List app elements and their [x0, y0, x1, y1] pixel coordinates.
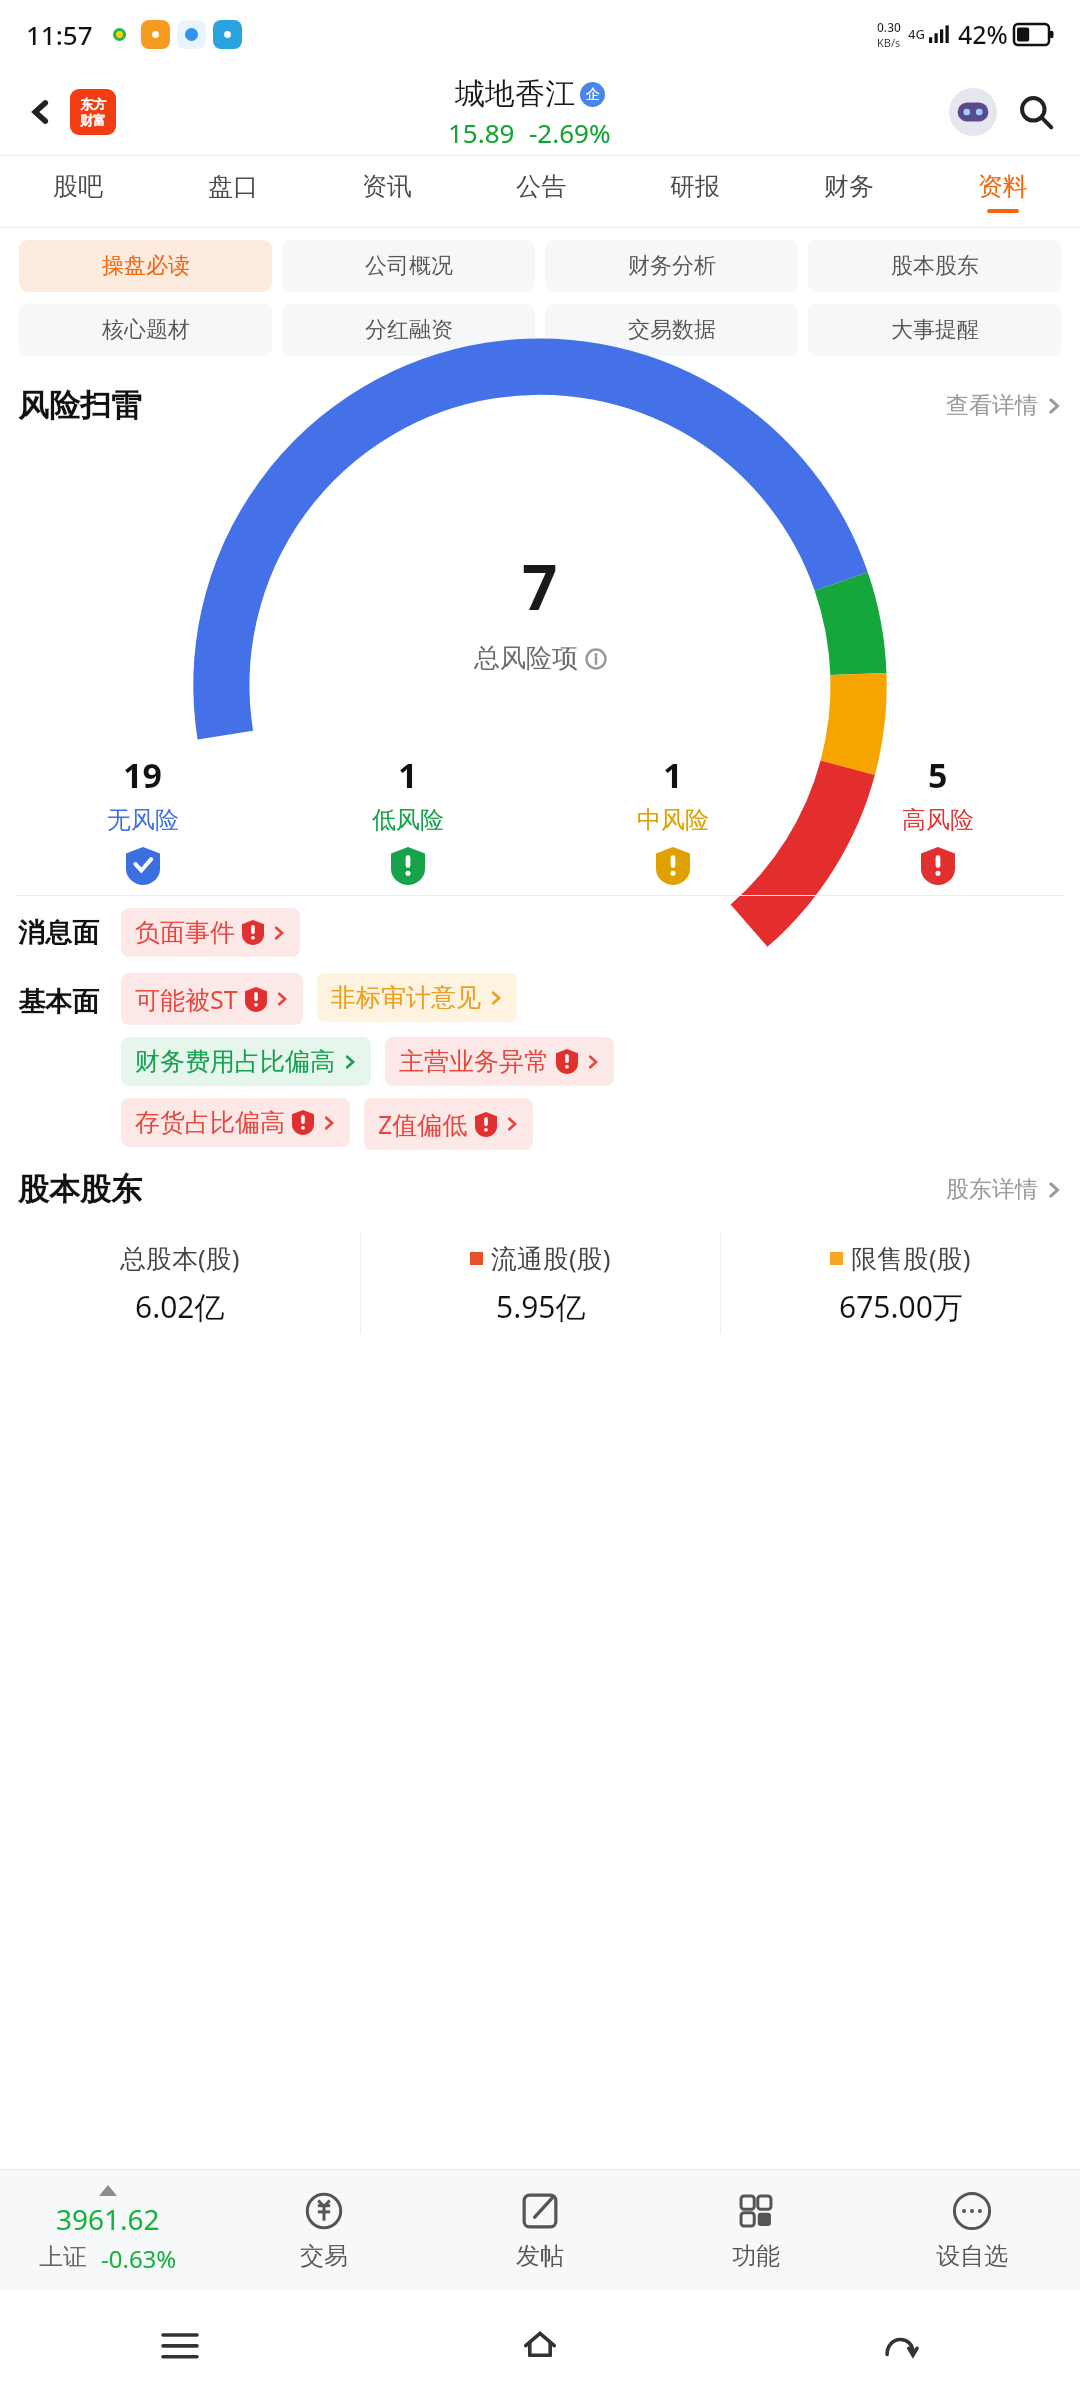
- staticText: 风险扫雷: [18, 386, 142, 425]
- button[interactable]: 研报: [618, 156, 772, 228]
- button[interactable]: 股本股东: [808, 240, 1061, 292]
- staticText: 3961.62: [56, 2200, 160, 2238]
- staticText: 财务分析: [628, 252, 716, 280]
- staticText: 5.95亿: [496, 1286, 586, 1327]
- staticText: 总股本(股): [120, 1240, 240, 1276]
- button[interactable]: Back: [18, 89, 64, 135]
- staticText: 存货占比偏高: [135, 1107, 285, 1138]
- staticText: 股吧: [53, 171, 103, 202]
- staticText: 资料: [978, 171, 1028, 202]
- button[interactable]: 资料: [926, 156, 1080, 228]
- staticText: 股本股东: [891, 252, 979, 280]
- button[interactable]: 19: [10, 752, 275, 885]
- staticText: 可能被ST: [135, 982, 238, 1016]
- button[interactable]: 5: [805, 752, 1070, 885]
- staticText: 操盘必读: [102, 252, 190, 280]
- button[interactable]: 总股本(股): [0, 1218, 360, 1348]
- button[interactable]: 交易数据: [545, 304, 798, 356]
- staticText: 6.02亿: [135, 1286, 225, 1327]
- button[interactable]: 存货占比偏高: [121, 1098, 350, 1147]
- button[interactable]: 大事提醒: [808, 304, 1061, 356]
- staticText: 盘口: [208, 171, 258, 202]
- staticText: 4G: [908, 25, 925, 43]
- staticText: 股本股东: [18, 1170, 142, 1209]
- button[interactable]: Search: [1010, 86, 1062, 138]
- staticText: 分红融资: [365, 316, 453, 344]
- staticText: 15.89: [448, 115, 515, 150]
- button[interactable]: 发帖: [432, 2170, 648, 2290]
- staticText: 0.30: [877, 19, 901, 35]
- staticText: 财务费用占比偏高: [135, 1046, 335, 1077]
- staticText: 负面事件: [135, 917, 235, 948]
- staticText: 公司概况: [365, 252, 453, 280]
- staticText: 财富: [80, 112, 106, 128]
- staticText: 42%: [958, 17, 1008, 51]
- staticText: 限售股(股): [851, 1240, 971, 1276]
- staticText: 股东详情: [946, 1175, 1038, 1204]
- staticText: 19: [123, 752, 162, 798]
- staticText: -0.63%: [101, 2242, 177, 2275]
- button[interactable]: East Money: [70, 89, 116, 135]
- staticText: 总风险项: [474, 642, 578, 675]
- button[interactable]: 公司概况: [282, 240, 535, 292]
- staticText: 上证: [39, 2242, 87, 2272]
- button[interactable]: 1: [275, 752, 540, 885]
- staticText: 财务: [824, 171, 874, 202]
- staticText: 城地香江: [455, 75, 575, 113]
- staticText: 11:57: [26, 17, 93, 52]
- staticText: 非标审计意见: [331, 982, 481, 1013]
- button[interactable]: 财务: [772, 156, 926, 228]
- staticText: 主营业务异常: [399, 1046, 549, 1077]
- staticText: -2.69%: [529, 115, 611, 150]
- button[interactable]: 股吧: [0, 156, 155, 228]
- button[interactable]: Recents: [0, 2290, 360, 2400]
- button[interactable]: Assistant: [944, 83, 1002, 141]
- button[interactable]: 盘口: [155, 156, 310, 228]
- staticText: 交易: [300, 2241, 348, 2271]
- button[interactable]: 流通股(股): [361, 1218, 720, 1348]
- staticText: 675.00万: [839, 1286, 963, 1327]
- staticText: 中风险: [637, 805, 709, 835]
- staticText: 流通股(股): [491, 1240, 611, 1276]
- staticText: 核心题材: [102, 316, 190, 344]
- staticText: 1: [398, 752, 418, 798]
- button[interactable]: 分红融资: [282, 304, 535, 356]
- button[interactable]: 财务费用占比偏高: [121, 1037, 371, 1086]
- staticText: Z值偏低: [378, 1107, 468, 1141]
- button[interactable]: 资讯: [310, 156, 464, 228]
- staticText: 高风险: [902, 805, 974, 835]
- staticText: 5: [928, 752, 948, 798]
- button[interactable]: 交易: [216, 2170, 432, 2290]
- staticText: 查看详情: [946, 391, 1038, 420]
- button[interactable]: 财务分析: [545, 240, 798, 292]
- staticText: 1: [663, 752, 683, 798]
- button[interactable]: 股东详情: [946, 1175, 1062, 1204]
- button[interactable]: 核心题材: [19, 304, 272, 356]
- button[interactable]: 查看详情: [946, 391, 1062, 420]
- staticText: 资讯: [362, 171, 412, 202]
- button[interactable]: 限售股(股): [721, 1218, 1080, 1348]
- staticText: KB/s: [877, 35, 901, 50]
- button[interactable]: 主营业务异常: [385, 1037, 614, 1086]
- staticText: 消息面: [18, 916, 99, 950]
- button[interactable]: 操盘必读: [19, 240, 272, 292]
- staticText: 研报: [670, 171, 720, 202]
- staticText: 发帖: [516, 2241, 564, 2271]
- staticText: 东方: [80, 96, 106, 112]
- button[interactable]: Home: [360, 2290, 720, 2400]
- button[interactable]: 设自选: [864, 2170, 1080, 2290]
- staticText: 大事提醒: [891, 316, 979, 344]
- button[interactable]: Back: [720, 2290, 1080, 2400]
- button[interactable]: 可能被ST: [121, 973, 303, 1025]
- button[interactable]: 公告: [464, 156, 618, 228]
- button[interactable]: 非标审计意见: [317, 973, 517, 1022]
- button[interactable]: Z值偏低: [364, 1098, 533, 1150]
- staticText: 设自选: [936, 2241, 1008, 2271]
- button[interactable]: 3961.62: [0, 2170, 216, 2290]
- staticText: 功能: [732, 2241, 780, 2271]
- button[interactable]: 负面事件: [121, 908, 300, 957]
- staticText: 公告: [516, 171, 566, 202]
- button[interactable]: 功能: [648, 2170, 864, 2290]
- staticText: 交易数据: [628, 316, 716, 344]
- button[interactable]: 1: [540, 752, 805, 885]
